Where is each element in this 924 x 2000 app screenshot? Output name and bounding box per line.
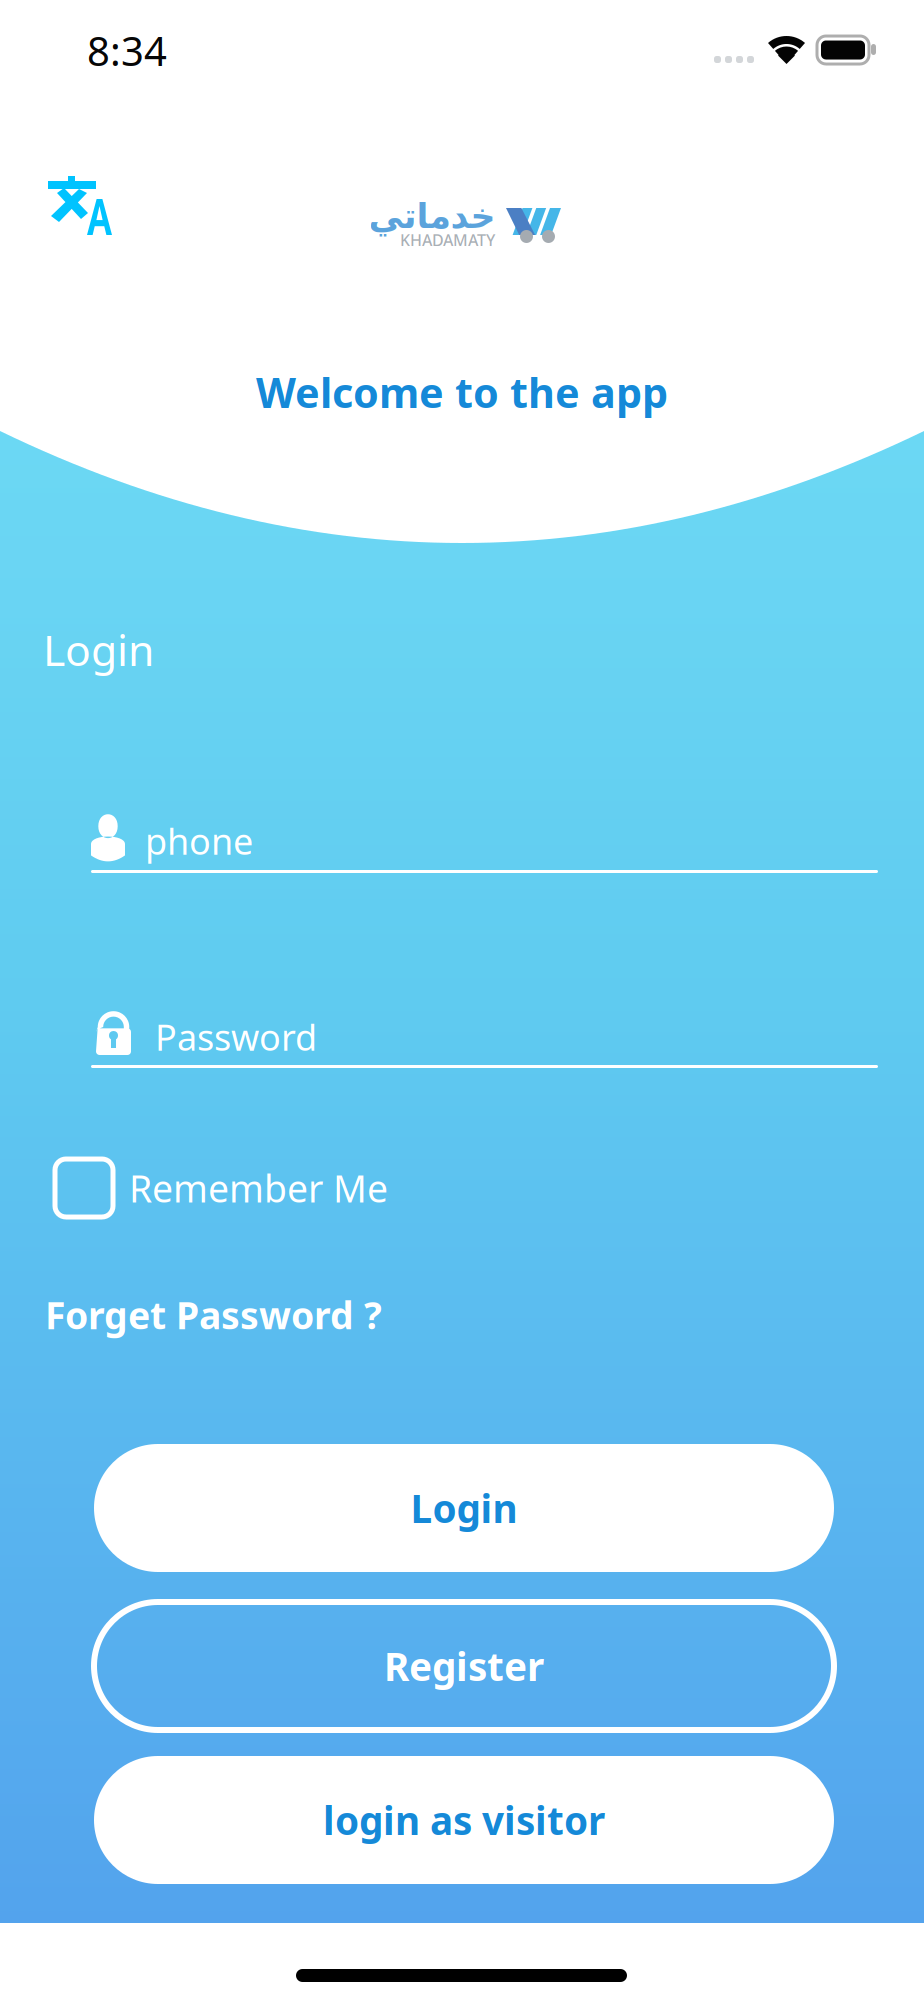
staticText: Forget Password ?: [45, 1290, 382, 1340]
staticText: Welcome to the app: [256, 365, 668, 419]
button[interactable]: Login: [94, 1444, 834, 1572]
button[interactable]: login as visitor: [94, 1756, 834, 1884]
staticText: Login: [43, 621, 154, 678]
staticText: Login: [410, 1482, 517, 1534]
staticText: phone: [145, 817, 253, 865]
staticText: خدماتي: [368, 196, 495, 236]
button[interactable]: Forget Password ?: [45, 1290, 382, 1340]
staticText: Register: [384, 1640, 544, 1692]
staticText: login as visitor: [323, 1794, 605, 1846]
button[interactable]: Change language: [48, 176, 112, 235]
staticText: Password: [155, 1013, 317, 1061]
staticText: 8:34: [87, 24, 167, 77]
staticText: KHADAMATY: [400, 229, 495, 251]
staticText: Remember Me: [129, 1163, 388, 1213]
button[interactable]: Remember Me: [55, 1159, 388, 1217]
button[interactable]: Register: [94, 1602, 834, 1730]
